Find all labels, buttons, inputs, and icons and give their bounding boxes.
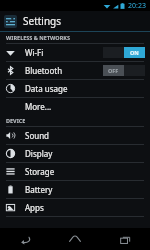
button[interactable]: Display — [0, 145, 150, 162]
staticText: Bluetooth — [25, 65, 63, 76]
staticText: Sound — [25, 130, 50, 141]
button[interactable]: Recent apps — [108, 228, 142, 250]
button[interactable]: More... — [0, 98, 150, 115]
button[interactable]: Battery — [0, 181, 150, 198]
staticText: Battery — [25, 184, 53, 195]
button[interactable]: Data usage — [0, 80, 150, 97]
button[interactable]: Wi-Fi — [0, 44, 150, 61]
staticText: Wi-Fi — [25, 47, 44, 58]
staticText: Storage — [25, 166, 55, 177]
staticText: WIRELESS & NETWORKS — [6, 34, 70, 41]
staticText: Display — [25, 148, 53, 159]
staticText: DEVICE — [6, 117, 26, 124]
button[interactable]: Sound — [0, 127, 150, 144]
button[interactable]: Bluetooth — [0, 62, 150, 79]
button[interactable]: Home — [58, 228, 92, 250]
button[interactable]: On — [103, 47, 145, 58]
staticText: OFF — [108, 67, 119, 74]
staticText: 20:23 — [128, 1, 146, 11]
button[interactable]: Off — [103, 65, 145, 76]
button[interactable]: Apps — [0, 199, 150, 216]
staticText: Apps — [25, 202, 44, 213]
staticText: ON — [130, 49, 139, 56]
staticText: Data usage — [25, 83, 68, 94]
staticText: Settings — [23, 14, 62, 28]
button[interactable]: Back — [8, 228, 42, 250]
staticText: More... — [25, 101, 52, 112]
other: Settings app icon — [4, 15, 17, 28]
button[interactable]: Storage — [0, 163, 150, 180]
